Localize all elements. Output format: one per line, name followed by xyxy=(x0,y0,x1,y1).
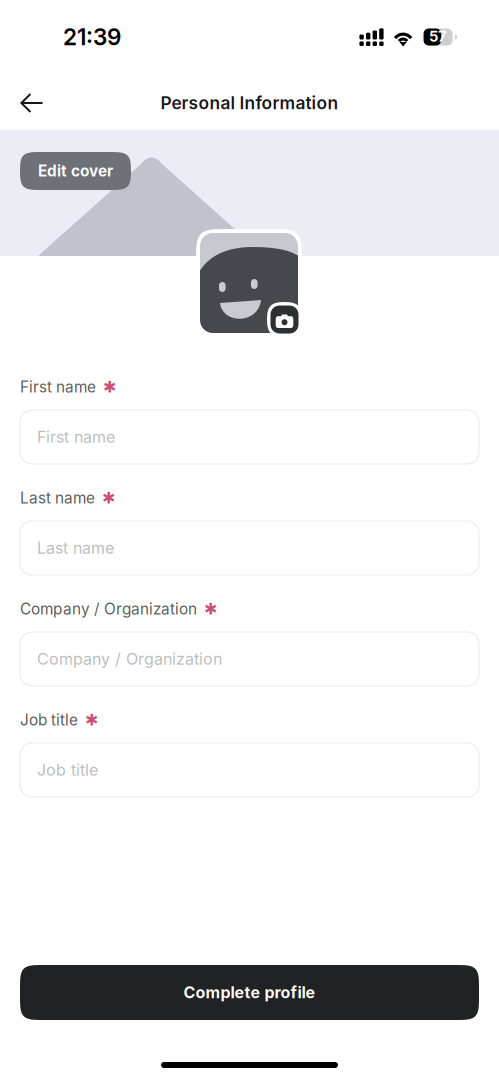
staticText: Company / Organization xyxy=(20,600,197,618)
staticText: Job title xyxy=(37,760,98,780)
staticText: ✱ xyxy=(103,378,116,396)
staticText: ✱ xyxy=(85,711,98,729)
staticText: 21:39 xyxy=(63,23,121,51)
staticText: ✱ xyxy=(204,600,217,618)
staticText: First name xyxy=(20,378,96,396)
staticText: Complete profile xyxy=(183,983,315,1002)
button[interactable]: Complete profile xyxy=(20,965,479,1020)
button[interactable]: First name xyxy=(20,410,479,464)
staticText: Company / Organization xyxy=(37,649,222,669)
button[interactable]: Edit cover xyxy=(20,152,131,190)
staticText: Last name xyxy=(37,538,114,558)
button[interactable]: Job title xyxy=(20,743,479,797)
button[interactable]: Change profile photo xyxy=(196,229,302,337)
staticText: Last name xyxy=(20,489,95,507)
staticText: First name xyxy=(37,427,115,447)
staticText: Personal Information xyxy=(160,92,338,113)
staticText: Edit cover xyxy=(38,162,113,180)
button[interactable]: Back xyxy=(0,79,64,127)
staticText: Job title xyxy=(20,711,78,729)
staticText: 57 xyxy=(429,28,447,45)
button[interactable]: Company / Organization xyxy=(20,632,479,686)
staticText: ✱ xyxy=(102,489,115,507)
button[interactable]: Last name xyxy=(20,521,479,575)
